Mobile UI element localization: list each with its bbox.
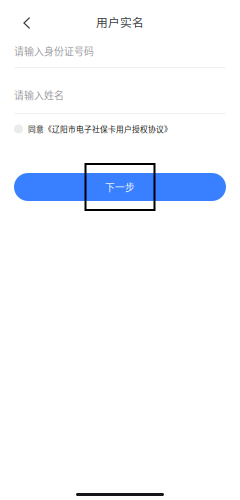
staticText: 请输入身份证号码 [14,44,94,58]
button[interactable]: Back [0,0,41,40]
staticText: 下一步 [105,180,135,194]
staticText: 用户实名 [96,13,144,30]
staticText: 请输入姓名 [14,88,64,102]
button[interactable]: 下一步 [14,173,226,201]
staticText: 同意《辽阳市电子社保卡用户授权协议》 [28,123,172,134]
button[interactable]: 同意《辽阳市电子社保卡用户授权协议》 [0,114,240,139]
